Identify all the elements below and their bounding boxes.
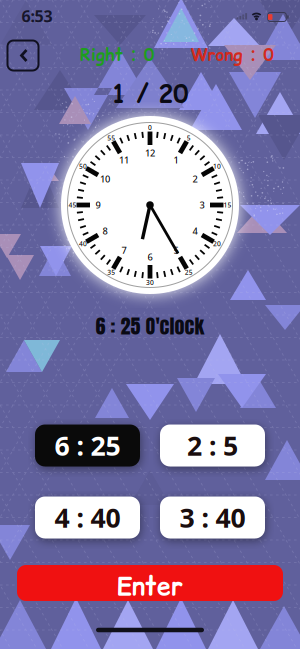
- staticText: 50: [79, 162, 87, 171]
- staticText: 4 : 40: [54, 500, 120, 535]
- staticText: 1 / 20: [111, 77, 188, 110]
- staticText: 5: [173, 244, 178, 256]
- staticText: 1: [173, 154, 178, 166]
- button[interactable]: 3 : 40: [160, 496, 265, 538]
- staticText: 3: [199, 199, 204, 211]
- staticText: Right : 0: [80, 43, 154, 67]
- staticText: 2: [192, 173, 197, 185]
- staticText: 12: [145, 147, 155, 159]
- button[interactable]: 4 : 40: [35, 496, 140, 538]
- staticText: 10: [213, 162, 221, 171]
- staticText: 45: [68, 201, 76, 209]
- staticText: 40: [79, 239, 87, 248]
- staticText: 6:53: [21, 5, 52, 27]
- staticText: 4: [192, 225, 197, 237]
- staticText: 0: [148, 123, 152, 132]
- staticText: 2 : 5: [187, 428, 238, 463]
- staticText: 30: [146, 278, 154, 287]
- staticText: 7: [121, 244, 126, 256]
- staticText: 55: [107, 133, 115, 142]
- staticText: 3 : 40: [179, 500, 245, 535]
- button[interactable]: Back: [7, 40, 38, 70]
- staticText: 25: [185, 268, 193, 277]
- staticText: 9: [95, 199, 100, 211]
- staticText: 35: [107, 268, 115, 277]
- staticText: 5: [187, 133, 191, 142]
- staticText: 20: [213, 239, 221, 248]
- staticText: 15: [223, 201, 231, 209]
- staticText: 6: [147, 251, 152, 263]
- staticText: 8: [102, 225, 107, 237]
- staticText: 6 : 25: [54, 428, 120, 463]
- staticText: Enter: [117, 569, 183, 603]
- button[interactable]: Enter: [17, 565, 283, 601]
- staticText: 10: [100, 173, 110, 185]
- button[interactable]: 2 : 5: [160, 424, 265, 466]
- staticText: Wrong : 0: [190, 43, 273, 67]
- staticText: 11: [119, 154, 129, 166]
- staticText: 6 : 25 O'clock: [95, 311, 204, 341]
- button[interactable]: 6 : 25: [35, 424, 140, 466]
